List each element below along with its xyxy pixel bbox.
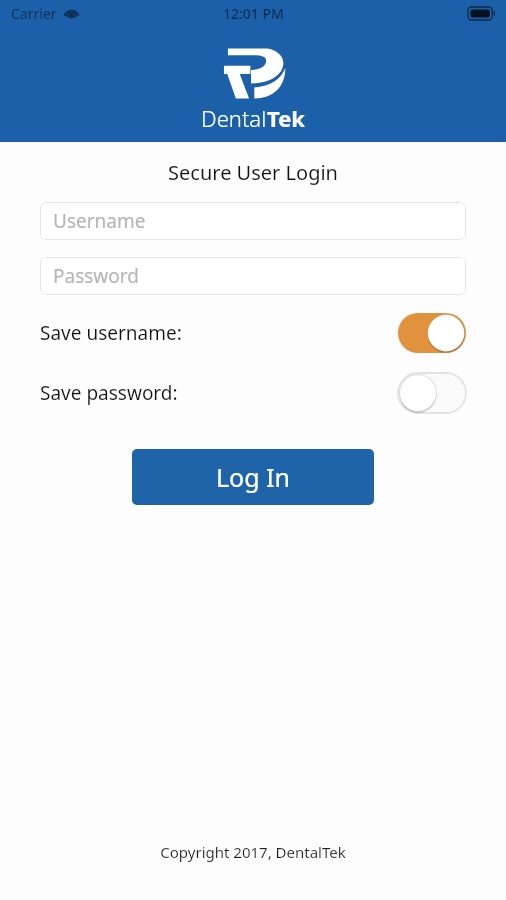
staticText: Carrier (11, 4, 57, 23)
staticText: 12:01 PM (223, 4, 284, 23)
staticText: Tek (267, 103, 305, 133)
staticText: Username (53, 208, 146, 234)
staticText: Save username: (40, 320, 182, 346)
other: On (398, 313, 466, 353)
staticText: Log In (216, 460, 291, 494)
button[interactable]: Password (40, 257, 466, 295)
staticText: Save password: (40, 380, 178, 406)
staticText: Secure User Login (0, 159, 506, 186)
button[interactable]: Username (40, 202, 466, 240)
button[interactable]: Save username: (40, 312, 466, 354)
button[interactable]: Log In (132, 449, 374, 505)
staticText: Dental (201, 103, 267, 133)
other: Off (398, 373, 466, 413)
button[interactable]: Save password: (40, 372, 466, 414)
staticText: Password (53, 263, 139, 289)
staticText: Copyright 2017, DentalTek (0, 842, 506, 862)
